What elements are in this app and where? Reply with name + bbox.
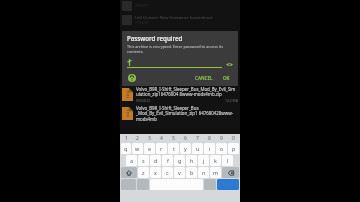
button[interactable]: Volvo_B9R_I-Shift_Sleeper_Bus _Mod_By_Ev… [120,104,240,124]
button[interactable]: Enter [217,179,239,190]
staticText: a [130,157,134,164]
button[interactable]: 6 [180,135,191,142]
button[interactable]: i [204,143,215,154]
staticText: 1 [125,135,128,142]
button[interactable]: 8 [204,135,215,142]
staticText: g [178,157,182,164]
staticText: r [160,145,163,152]
staticText: 17/03/21 [135,21,149,25]
staticText: n [202,169,206,176]
staticText: 6 [184,135,187,142]
staticText: 29/02/11 [135,4,149,8]
button[interactable]: c [162,167,173,178]
button[interactable]: n [198,167,209,178]
button[interactable]: a [126,155,137,166]
staticText: k [214,157,217,164]
button[interactable]: Backspace [222,167,239,178]
button[interactable]: Show password [225,60,233,68]
button[interactable]: Volvo_B9R_I-Shift_Sleeper_Bus_Mod_By_Evi… [120,85,240,104]
button[interactable]: s [138,155,149,166]
staticText: Password required [127,34,183,42]
staticText: 9 [220,135,223,142]
staticText: e [148,145,152,152]
staticText: q [124,145,128,152]
button[interactable]: e [144,143,155,154]
staticText: 14.2 MB [225,98,238,103]
staticText: i [209,145,211,152]
button[interactable]: p [228,143,239,154]
button[interactable]: h [186,155,197,166]
button[interactable]: b [186,167,197,178]
button[interactable]: u [192,143,203,154]
button[interactable]: Help [127,73,137,83]
staticText: d [154,157,158,164]
staticText: y [184,145,187,152]
staticText: 0 [232,135,235,142]
button[interactable]: f [162,155,173,166]
staticText: f [167,157,169,164]
button[interactable]: l [222,155,233,166]
button[interactable]: OK [220,74,233,82]
button[interactable]: j [198,155,209,166]
staticText: p [232,145,236,152]
staticText: j [203,157,205,164]
button[interactable]: 29/02/11 [120,0,240,12]
staticText: 4 [160,135,163,142]
button[interactable]: d [150,155,161,166]
button[interactable]: z [138,167,149,178]
staticText: 7 [196,135,199,142]
button[interactable]: o [216,143,227,154]
staticText: c [166,169,169,176]
button[interactable]: 7 [192,135,203,142]
button[interactable]: 5 [168,135,179,142]
staticText: OK [223,75,230,81]
staticText: This archive is encrypted. Enter passwor… [127,44,233,54]
button[interactable]: r [156,143,167,154]
staticText: m [213,169,219,176]
staticText: t [173,145,175,152]
staticText: Udl Quester New Container bussidmod [135,15,212,21]
button[interactable]: g [174,155,185,166]
staticText: z [142,169,145,176]
staticText: x [154,169,157,176]
button[interactable]: m [210,167,221,178]
button[interactable]: 4 [156,135,167,142]
staticText: 5 [172,135,175,142]
button[interactable]: 2 [132,135,143,142]
staticText: b [190,169,194,176]
button[interactable]: x [150,167,161,178]
button[interactable]: 3 [144,135,155,142]
staticText: 09/04/22 [136,98,151,103]
button[interactable]: 1 [121,135,131,142]
button[interactable]: Shift [121,167,137,178]
button[interactable]: q [121,143,131,154]
button[interactable]: 0 [228,135,239,142]
staticText: l [227,157,229,164]
staticText: 2 [136,135,139,142]
button[interactable]: k [210,155,221,166]
button[interactable]: Udl Quester New Container bussidmod [120,12,240,28]
staticText: CANCEL [195,75,213,81]
button[interactable]: Show password [127,58,233,69]
staticText: 8 [208,135,211,142]
staticText: s [142,157,145,164]
button[interactable]: v [174,167,185,178]
staticText: Volvo_B9R_I-Shift_Sleeper_Bus _Mod_By_Ev… [136,105,238,123]
button[interactable]: CANCEL [192,74,216,82]
staticText: u [196,145,200,152]
button[interactable]: t [168,143,179,154]
staticText: h [190,157,194,164]
staticText: w [135,145,140,152]
staticText: Volvo_B9R_I-Shift_Sleeper_Bus_Mod_By_Evi… [136,86,238,98]
button[interactable]: 9 [216,135,227,142]
button[interactable]: y [180,143,191,154]
staticText: o [220,145,224,152]
staticText: 3 [148,135,151,142]
staticText: v [178,169,181,176]
button[interactable]: w [132,143,143,154]
